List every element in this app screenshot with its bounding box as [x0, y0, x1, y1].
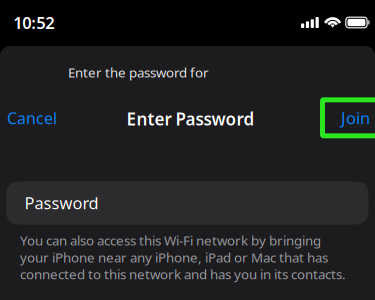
staticText: You can also access this Wi-Fi network b… [20, 231, 346, 283]
button[interactable]: Join [320, 97, 375, 138]
button[interactable]: Cancel [0, 98, 71, 138]
staticText: Join [341, 107, 370, 129]
staticText: Cancel [7, 107, 57, 129]
staticText: Enter Password [126, 108, 254, 130]
button[interactable]: Password [6, 181, 368, 225]
staticText: 10:52 [13, 11, 54, 33]
staticText: Password [24, 192, 98, 214]
staticText: Enter the password for [68, 63, 209, 81]
